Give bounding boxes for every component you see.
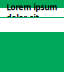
staticText: Lorem ipsum dolor sit: [6, 2, 57, 23]
